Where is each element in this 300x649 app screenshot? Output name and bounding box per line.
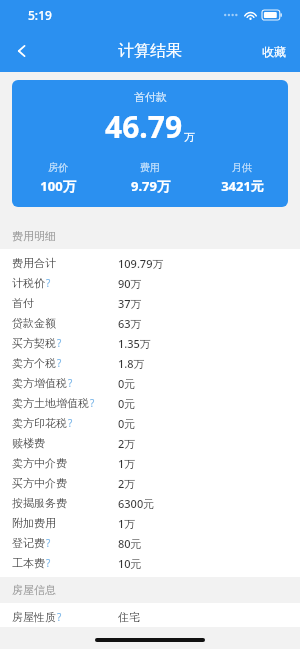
- button[interactable]: Back: [0, 30, 44, 72]
- staticText: 房屋信息: [12, 583, 56, 597]
- staticText: 登记费: [12, 536, 45, 550]
- staticText: 9.79万: [131, 177, 170, 195]
- staticText: 109.79万: [118, 256, 164, 271]
- button[interactable]: 房屋性质: [0, 607, 300, 627]
- staticText: 1.35万: [118, 336, 151, 351]
- staticText: 卖方个税: [12, 356, 56, 370]
- staticText: ?: [68, 416, 73, 430]
- staticText: ?: [46, 556, 51, 570]
- staticText: 费用合计: [12, 256, 56, 270]
- staticText: 0元: [118, 376, 136, 391]
- staticText: 1.8万: [118, 356, 145, 371]
- staticText: 10元: [118, 556, 142, 571]
- staticText: 37万: [118, 296, 142, 311]
- button[interactable]: 首付: [0, 293, 300, 313]
- staticText: 万: [184, 130, 195, 144]
- button[interactable]: 卖方中介费: [0, 453, 300, 473]
- staticText: 买方中介费: [12, 476, 67, 490]
- button[interactable]: 赎楼费: [0, 433, 300, 453]
- staticText: 赎楼费: [12, 436, 45, 450]
- button[interactable]: 收藏: [248, 30, 300, 72]
- button[interactable]: 卖方土地增值税: [0, 393, 300, 413]
- staticText: 房屋性质: [12, 610, 56, 624]
- staticText: 买方契税: [12, 336, 56, 350]
- staticText: 卖方印花税: [12, 416, 67, 430]
- button[interactable]: 买方中介费: [0, 473, 300, 493]
- staticText: 住宅: [118, 610, 140, 624]
- staticText: 0元: [118, 396, 136, 411]
- staticText: 计算结果: [118, 41, 182, 61]
- staticText: 63万: [118, 316, 142, 331]
- button[interactable]: 卖方印花税: [0, 413, 300, 433]
- button[interactable]: 费用合计: [0, 253, 300, 273]
- staticText: 46.79: [105, 106, 183, 147]
- staticText: 80元: [118, 536, 142, 551]
- staticText: 贷款金额: [12, 316, 56, 330]
- button[interactable]: 贷款金额: [0, 313, 300, 333]
- staticText: 3421元: [221, 177, 264, 195]
- staticText: ?: [90, 396, 95, 410]
- staticText: ?: [57, 610, 62, 624]
- staticText: ?: [46, 536, 51, 550]
- button[interactable]: 工本费: [0, 553, 300, 573]
- staticText: ?: [57, 356, 62, 370]
- staticText: 按揭服务费: [12, 496, 67, 510]
- staticText: 月供: [232, 161, 252, 174]
- button[interactable]: 按揭服务费: [0, 493, 300, 513]
- staticText: 卖方中介费: [12, 456, 67, 470]
- staticText: 首付: [12, 296, 34, 310]
- staticText: ?: [46, 276, 51, 290]
- staticText: 费用: [140, 161, 160, 174]
- staticText: 房价: [48, 161, 68, 174]
- staticText: 100万: [40, 177, 76, 195]
- staticText: 卖方增值税: [12, 376, 67, 390]
- button[interactable]: 卖方增值税: [0, 373, 300, 393]
- staticText: 0元: [118, 416, 136, 431]
- button[interactable]: 附加费用: [0, 513, 300, 533]
- staticText: 收藏: [262, 44, 286, 59]
- staticText: 1万: [118, 516, 136, 531]
- staticText: 6300元: [118, 496, 155, 511]
- staticText: 2万: [118, 476, 136, 491]
- staticText: 90万: [118, 276, 142, 291]
- staticText: 工本费: [12, 556, 45, 570]
- staticText: 5:19: [28, 7, 52, 23]
- button[interactable]: 首付款: [12, 80, 288, 207]
- staticText: ?: [68, 376, 73, 390]
- staticText: 计税价: [12, 276, 45, 290]
- button[interactable]: 卖方个税: [0, 353, 300, 373]
- staticText: 费用明细: [12, 229, 56, 243]
- staticText: 附加费用: [12, 516, 56, 530]
- button[interactable]: 登记费: [0, 533, 300, 553]
- staticText: 2万: [118, 436, 136, 451]
- staticText: ?: [57, 336, 62, 350]
- staticText: 1万: [118, 456, 136, 471]
- staticText: 首付款: [134, 90, 167, 104]
- button[interactable]: 计税价: [0, 273, 300, 293]
- button[interactable]: 买方契税: [0, 333, 300, 353]
- staticText: 卖方土地增值税: [12, 396, 89, 410]
